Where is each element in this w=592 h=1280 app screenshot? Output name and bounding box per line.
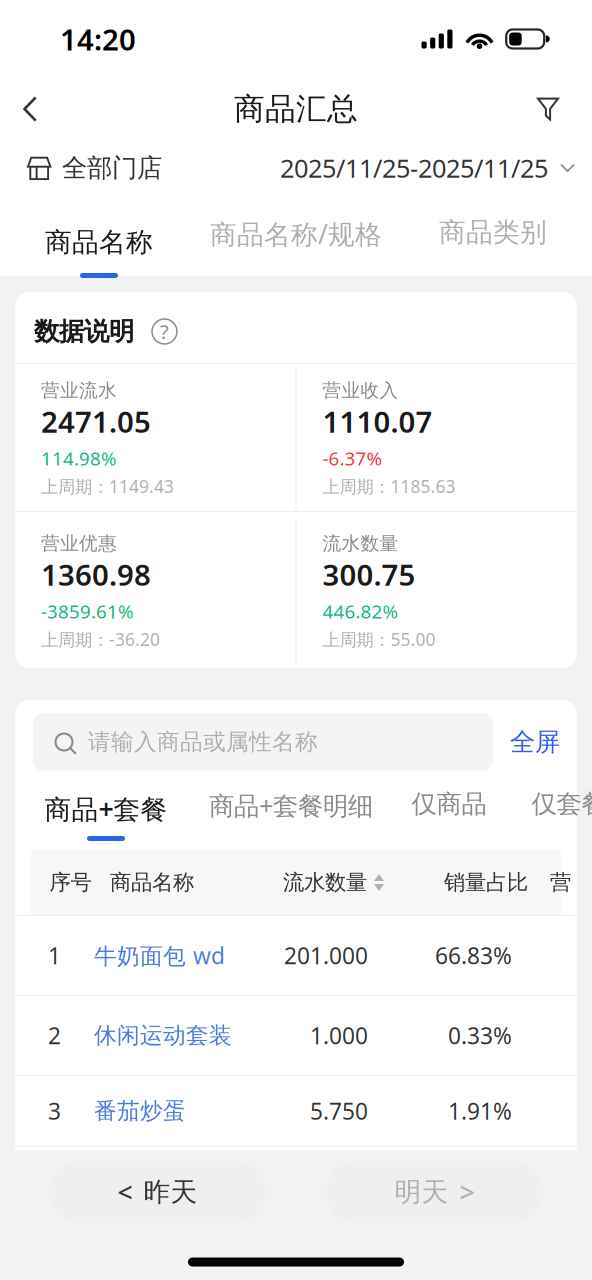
button[interactable]: 全屏 (510, 713, 560, 771)
staticText: 数据说明 (34, 316, 134, 347)
staticText: 序号 (49, 869, 91, 896)
staticText: 昨天 (143, 1176, 197, 1208)
staticText: 114.98% (41, 446, 117, 471)
staticText: 1 (48, 940, 61, 970)
staticText: 3 (48, 1096, 61, 1126)
staticText: 2471.05 (41, 402, 151, 441)
button[interactable]: 数据说明帮助 (152, 319, 177, 344)
staticText: 2 (48, 1020, 61, 1050)
button[interactable]: 商品名称/规格 (198, 196, 394, 296)
button[interactable]: 返回 (3, 82, 57, 136)
staticText: 商品名称 (110, 869, 194, 896)
button[interactable]: 商品名称 (0, 206, 198, 286)
staticText: 仅商品 (411, 788, 486, 820)
staticText: 流水数量 (322, 532, 398, 555)
staticText: 2025/11/25-2025/11/25 (280, 151, 548, 185)
button[interactable]: 请输入商品或属性名称 (33, 713, 493, 771)
button[interactable]: 明天 (326, 1161, 543, 1223)
staticText: 商品名称/规格 (210, 216, 382, 251)
staticText: 1.91% (448, 1096, 512, 1126)
staticText: 商品+套餐明细 (209, 788, 373, 822)
button[interactable]: 2025/11/25-2025/11/25 (280, 145, 575, 191)
staticText: 牛奶面包 wd (94, 940, 225, 970)
staticText: 全屏 (510, 726, 560, 757)
staticText: 休闲运动套装 (94, 1022, 232, 1049)
staticText: 1360.98 (41, 555, 151, 594)
button[interactable]: 2 (15, 996, 577, 1075)
button[interactable]: 商品+套餐 (15, 786, 197, 848)
staticText: 300.75 (322, 555, 415, 594)
staticText: 销量占比 (444, 869, 528, 896)
staticText: 明天 (394, 1176, 448, 1208)
staticText: 营业收入 (322, 379, 398, 402)
staticText: 1.000 (310, 1020, 368, 1050)
staticText: 5.750 (310, 1096, 368, 1126)
staticText: 仅套餐 (531, 788, 592, 820)
staticText: 流水数量 (283, 869, 367, 896)
staticText: < (117, 1174, 132, 1210)
staticText: 营业优惠 (41, 532, 117, 555)
staticText: -3859.61% (41, 599, 134, 624)
staticText: 66.83% (435, 940, 512, 970)
button[interactable]: 商品+套餐明细 (197, 783, 385, 850)
staticText: -6.37% (322, 446, 382, 471)
staticText: 201.000 (284, 940, 368, 970)
staticText: 446.82% (322, 599, 398, 624)
staticText: 番茄炒蛋 (94, 1097, 186, 1125)
staticText: 14:20 (60, 19, 136, 58)
staticText: 全部门店 (62, 152, 162, 183)
staticText: 请输入商品或属性名称 (88, 728, 318, 756)
staticText: 0.33% (448, 1020, 512, 1050)
staticText: 上周期：1185.63 (322, 475, 455, 498)
staticText: 上周期：1149.43 (41, 475, 174, 498)
button[interactable]: 1 (15, 916, 577, 995)
button[interactable]: 仅商品 (385, 783, 513, 850)
staticText: 1110.07 (322, 402, 432, 441)
staticText: 营业流水 (41, 379, 117, 402)
button[interactable]: 商品类别 (394, 196, 592, 296)
button[interactable]: < (49, 1161, 266, 1223)
staticText: 商品+套餐 (44, 791, 167, 826)
staticText: 商品类别 (439, 216, 547, 249)
staticText: 营 (550, 869, 571, 896)
staticText: 商品名称 (45, 226, 153, 259)
button[interactable]: 全部门店 (27, 146, 162, 189)
button[interactable]: 3 (15, 1076, 577, 1146)
staticText: > (459, 1174, 474, 1210)
staticText: 上周期：55.00 (322, 628, 435, 651)
button[interactable]: 筛选 (517, 82, 579, 136)
staticText: ? (160, 318, 169, 345)
staticText: 上周期：-36.20 (41, 628, 160, 651)
staticText: 商品汇总 (234, 90, 358, 128)
button[interactable]: 仅套餐 (513, 783, 592, 850)
